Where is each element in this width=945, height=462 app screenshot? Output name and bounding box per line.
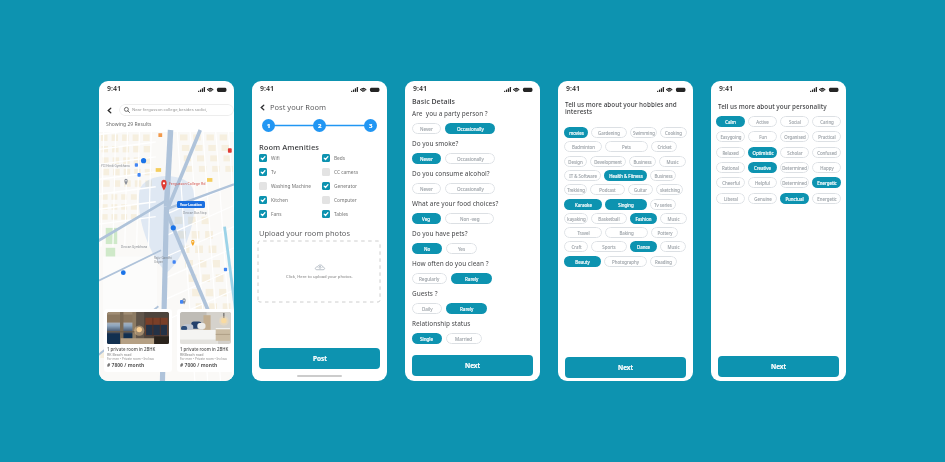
button[interactable]: Rarely — [451, 273, 492, 284]
button[interactable]: Next — [412, 355, 533, 376]
button[interactable]: Energetic — [812, 177, 841, 188]
button[interactable]: Singing — [605, 199, 647, 210]
button[interactable]: No — [412, 243, 442, 254]
button[interactable]: Music — [660, 213, 687, 224]
button[interactable]: Rarely — [446, 303, 487, 314]
button[interactable]: Guitar — [628, 184, 653, 195]
button[interactable]: Married — [446, 333, 482, 344]
button[interactable]: Photography — [604, 256, 647, 267]
button[interactable]: Determined — [780, 177, 809, 188]
button[interactable]: Creative — [748, 162, 777, 173]
button[interactable]: Non -veg — [445, 213, 494, 224]
button[interactable]: Regularly — [412, 273, 447, 284]
button[interactable]: Never — [412, 183, 441, 194]
button[interactable]: Pottery — [651, 227, 678, 238]
button[interactable]: Practical — [812, 131, 841, 142]
staticText: Tv series — [654, 202, 672, 208]
button[interactable]: Veg — [412, 213, 441, 224]
button[interactable]: Reading — [650, 256, 677, 267]
button[interactable]: Yes — [446, 243, 477, 254]
button[interactable]: Relaxed — [716, 147, 745, 158]
button[interactable]: Tv series — [650, 199, 676, 210]
button[interactable]: Music — [659, 156, 686, 167]
button[interactable]: 1 private room in 2BHK — [107, 312, 169, 369]
button[interactable]: Fans — [259, 207, 322, 221]
button[interactable]: Baking — [605, 227, 648, 238]
button[interactable]: Step 2 — [313, 119, 326, 132]
button[interactable]: Occasionally — [445, 183, 495, 194]
button[interactable]: Step 3 — [364, 119, 377, 132]
button[interactable]: Determined — [780, 162, 809, 173]
button[interactable]: Happy — [812, 162, 841, 173]
button[interactable]: Cheerful — [716, 177, 745, 188]
button[interactable]: Business — [629, 156, 656, 167]
button[interactable]: Occasionally — [445, 153, 495, 164]
button[interactable]: Computer — [322, 193, 380, 207]
button[interactable]: Back to previous screen — [259, 101, 380, 113]
button[interactable]: 1 private room in 2BHK — [180, 312, 231, 369]
button[interactable]: Genuine — [748, 193, 777, 204]
button[interactable]: Music — [660, 241, 686, 252]
button[interactable]: Design — [564, 156, 587, 167]
button[interactable]: Washing Machine — [259, 179, 322, 193]
button[interactable]: Cooking — [660, 127, 687, 138]
button[interactable]: Occasionally — [445, 123, 495, 134]
button[interactable]: Podcast — [590, 184, 625, 195]
button[interactable]: Next — [718, 356, 839, 377]
button[interactable]: Dance — [630, 241, 657, 252]
button[interactable]: sketching — [656, 184, 683, 195]
button[interactable]: Step 1 — [262, 119, 275, 132]
button[interactable]: Rational — [716, 162, 745, 173]
button[interactable]: Gardening — [591, 127, 627, 138]
button[interactable]: Cricket — [651, 141, 677, 152]
button[interactable]: Back — [99, 104, 119, 116]
button[interactable]: Confused — [812, 147, 841, 158]
button[interactable]: Craft — [564, 241, 588, 252]
button[interactable]: Trekking — [564, 184, 587, 195]
button[interactable]: Caring — [812, 116, 841, 127]
button[interactable]: Scholar — [780, 147, 809, 158]
button[interactable]: CC camera — [322, 165, 380, 179]
button[interactable]: Development — [590, 156, 626, 167]
button[interactable]: Optimistic — [748, 147, 777, 158]
button[interactable]: Near fergusson college,besides sodici, — [124, 104, 234, 116]
button[interactable]: Business — [650, 170, 676, 181]
button[interactable]: Next — [565, 357, 686, 378]
button[interactable]: Sports — [591, 241, 627, 252]
button[interactable]: Fun — [748, 131, 777, 142]
button[interactable]: Pets — [605, 141, 648, 152]
button[interactable]: Post — [259, 348, 380, 369]
button[interactable]: Wifi — [259, 151, 322, 165]
button[interactable]: kayaking — [564, 213, 588, 224]
button[interactable]: IT & Software — [564, 170, 601, 181]
button[interactable]: Active — [748, 116, 777, 127]
button[interactable]: Punctual — [780, 193, 809, 204]
button[interactable]: Liberal — [716, 193, 745, 204]
button[interactable]: Click, Here to upload your photos. — [258, 241, 380, 302]
button[interactable]: Generator — [322, 179, 380, 193]
button[interactable]: Basketball — [591, 213, 627, 224]
button[interactable]: Swimming — [630, 127, 657, 138]
button[interactable]: Energetic — [812, 193, 841, 204]
button[interactable]: Health & Fitness — [604, 170, 647, 181]
button[interactable]: Beauty — [564, 256, 601, 267]
button[interactable]: Fashion — [630, 213, 657, 224]
button[interactable]: Helpful — [748, 177, 777, 188]
button[interactable]: movies — [564, 127, 588, 138]
button[interactable]: Daily — [412, 303, 442, 314]
button[interactable]: Organised — [780, 131, 809, 142]
button[interactable]: Never — [412, 153, 441, 164]
button[interactable]: Tv — [259, 165, 322, 179]
button[interactable]: Easygoing — [716, 131, 745, 142]
button[interactable]: Karaoke — [564, 199, 602, 210]
button[interactable]: Social — [780, 116, 809, 127]
button[interactable]: Badminton — [564, 141, 602, 152]
button[interactable]: Calm — [716, 116, 745, 127]
button[interactable]: Beds — [322, 151, 380, 165]
button[interactable]: Never — [412, 123, 441, 134]
button[interactable]: Tables — [322, 207, 380, 221]
button[interactable]: Kitchen — [259, 193, 322, 207]
button[interactable]: Single — [412, 333, 442, 344]
button[interactable]: Travel — [564, 227, 602, 238]
staticText: Single — [420, 336, 434, 342]
